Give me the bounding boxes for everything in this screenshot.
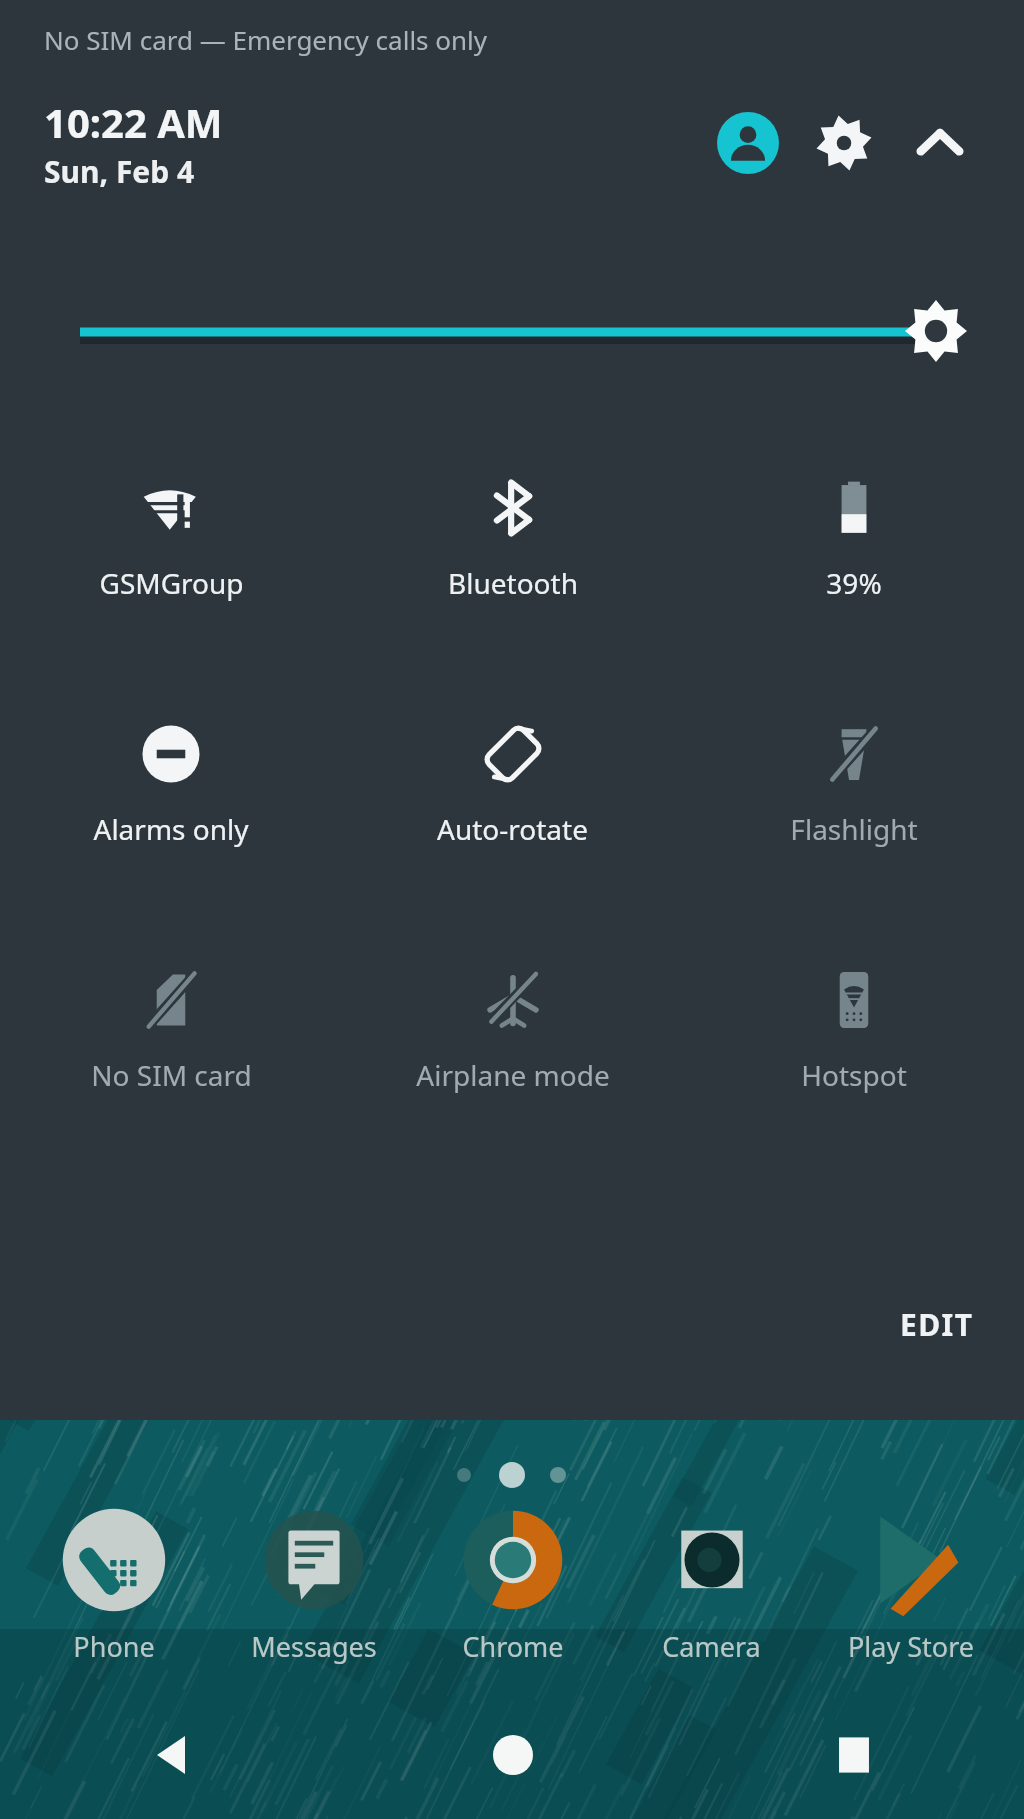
staticText: GSMGroup <box>99 564 244 602</box>
button[interactable]: GSMGroup <box>0 466 342 602</box>
staticText: Airplane mode <box>416 1056 610 1094</box>
button[interactable]: Recent apps <box>683 1691 1024 1819</box>
button[interactable]: Airplane mode <box>342 958 683 1094</box>
button[interactable]: Collapse panel <box>892 95 988 191</box>
button[interactable]: No SIM card <box>0 958 342 1094</box>
staticText: Auto-rotate <box>437 810 588 848</box>
button[interactable]: Bluetooth <box>342 466 683 602</box>
staticText: EDIT <box>900 1304 974 1345</box>
button[interactable]: Home <box>342 1691 683 1819</box>
staticText: 10:22 AM <box>44 95 223 149</box>
button[interactable]: Phone <box>14 1496 214 1665</box>
button[interactable]: Play Store <box>811 1496 1010 1665</box>
staticText: Sun, Feb 4 <box>44 151 195 192</box>
button[interactable]: 39% <box>683 466 1024 602</box>
button[interactable]: Flashlight <box>683 712 1024 848</box>
staticText: Chrome <box>462 1628 564 1665</box>
button[interactable]: Chrome <box>413 1496 612 1665</box>
staticText: Camera <box>662 1628 761 1665</box>
staticText: Hotspot <box>801 1056 907 1094</box>
button[interactable]: Auto-rotate <box>342 712 683 848</box>
button[interactable]: Messages <box>214 1496 413 1665</box>
button[interactable]: Hotspot <box>683 958 1024 1094</box>
button[interactable]: User profile <box>700 95 796 191</box>
button[interactable]: Alarms only <box>0 712 342 848</box>
button[interactable]: Camera <box>612 1496 811 1665</box>
button[interactable]: Brightness <box>80 284 980 380</box>
staticText: Flashlight <box>790 810 918 848</box>
staticText: Play Store <box>848 1628 974 1665</box>
button[interactable]: EDIT <box>874 1290 1000 1359</box>
staticText: 39% <box>826 564 882 602</box>
staticText: No SIM card <box>91 1056 252 1094</box>
staticText: No SIM card — Emergency calls only <box>44 22 488 57</box>
staticText: Bluetooth <box>448 564 578 602</box>
button[interactable]: Back <box>0 1691 342 1819</box>
staticText: Alarms only <box>93 810 249 848</box>
button[interactable]: Settings <box>796 95 892 191</box>
button[interactable]: 10:22 AM <box>44 95 223 192</box>
staticText: Messages <box>251 1628 377 1665</box>
staticText: Phone <box>73 1628 155 1665</box>
